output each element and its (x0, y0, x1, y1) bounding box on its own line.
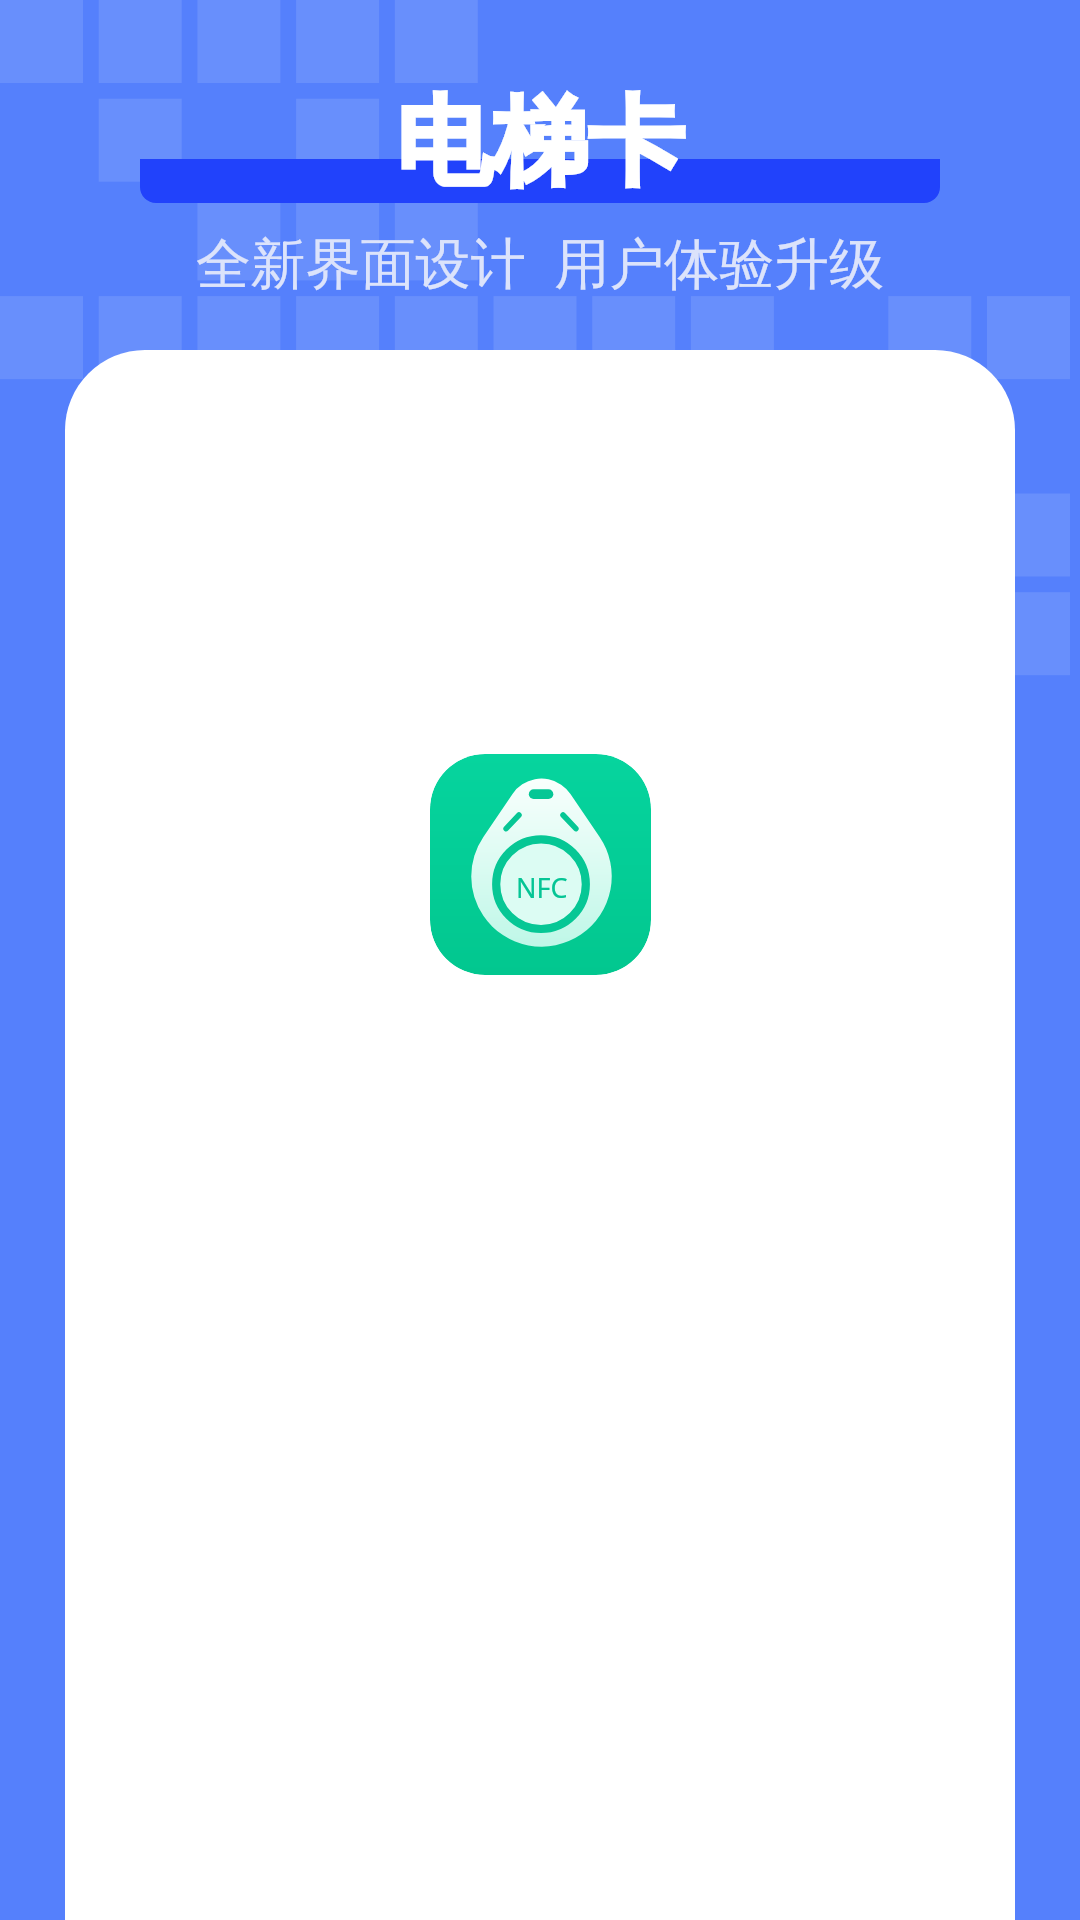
button[interactable]: NFC 电梯卡 (430, 754, 651, 975)
staticText: NFC (516, 869, 568, 906)
staticText: 全新界面设计 用户体验升级 (0, 224, 1080, 299)
staticText: 电梯卡 (0, 83, 1080, 204)
